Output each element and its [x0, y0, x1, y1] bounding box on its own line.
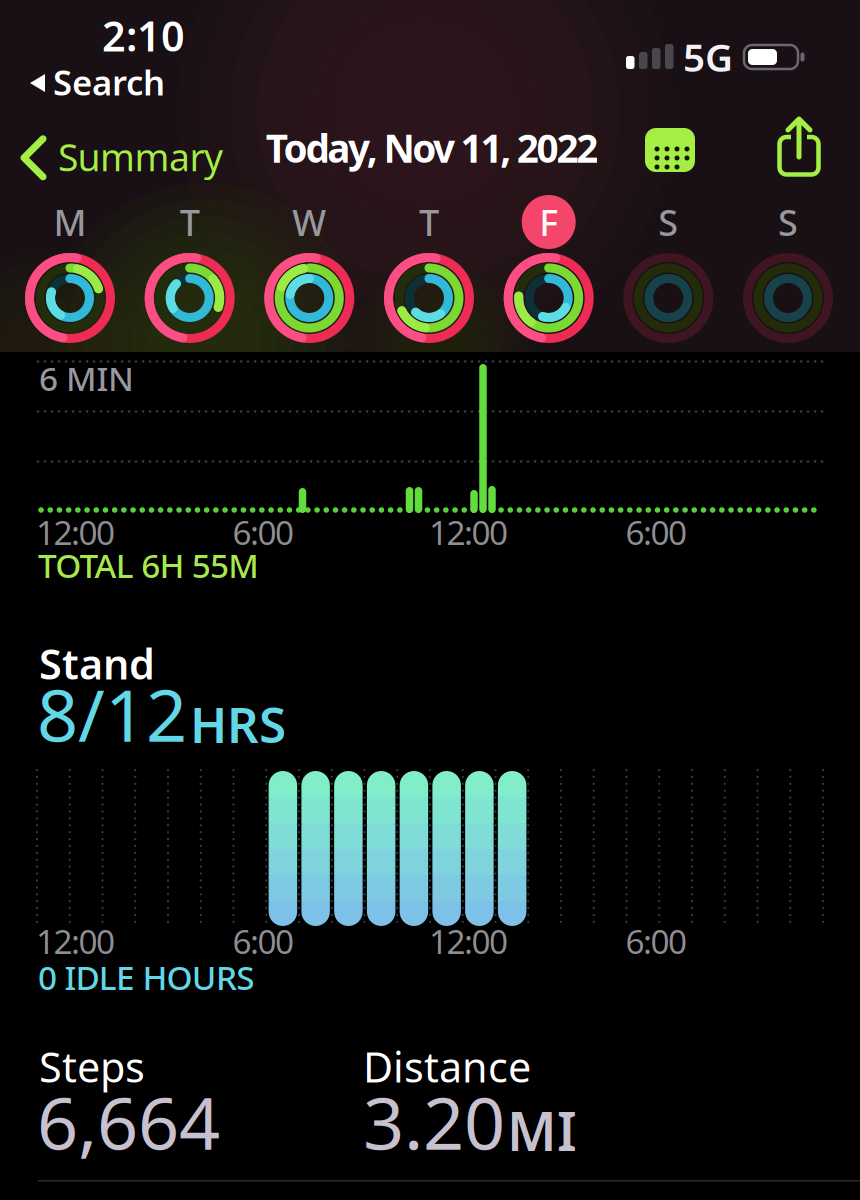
staticText: 12:00: [36, 510, 115, 554]
button[interactable]: Summary: [21, 133, 223, 183]
staticText: 8/12: [37, 666, 187, 762]
staticText: Today, Nov 11, 2022: [266, 122, 598, 173]
staticText: 12:00: [429, 510, 508, 554]
button[interactable]: Search: [30, 60, 165, 106]
staticText: Distance: [363, 1039, 531, 1094]
staticText: 12:00: [36, 919, 115, 963]
staticText: 5G: [683, 31, 733, 82]
staticText: 6,664: [37, 1074, 220, 1170]
staticText: Stand: [39, 636, 155, 691]
staticText: F: [539, 198, 558, 246]
staticText: S: [658, 198, 678, 246]
button[interactable]: S: [728, 196, 848, 351]
staticText: S: [778, 198, 798, 246]
button[interactable]: S: [608, 196, 728, 351]
staticText: 0 IDLE HOURS: [38, 955, 254, 999]
staticText: 12:00: [429, 919, 508, 963]
button[interactable]: M: [10, 196, 130, 351]
button[interactable]: T: [130, 196, 250, 351]
button[interactable]: [777, 117, 821, 177]
staticText: TOTAL 6H 55M: [38, 543, 259, 587]
button[interactable]: W: [249, 196, 369, 351]
button[interactable]: F: [489, 196, 609, 351]
staticText: Steps: [39, 1039, 145, 1094]
staticText: M: [53, 198, 86, 246]
staticText: 6:00: [625, 510, 687, 554]
staticText: 2:10: [102, 8, 185, 63]
button[interactable]: [645, 128, 695, 172]
staticText: T: [180, 198, 200, 246]
staticText: Summary: [58, 132, 223, 182]
staticText: HRS: [190, 691, 286, 757]
staticText: 6 MIN: [39, 356, 134, 400]
staticText: W: [292, 198, 326, 246]
staticText: MI: [507, 1095, 577, 1166]
button[interactable]: T: [369, 196, 489, 351]
staticText: 6:00: [625, 919, 687, 963]
staticText: Search: [53, 59, 165, 105]
staticText: 6:00: [232, 919, 294, 963]
staticText: 6:00: [232, 510, 294, 554]
staticText: T: [419, 198, 439, 246]
staticText: 3.20: [363, 1074, 505, 1170]
